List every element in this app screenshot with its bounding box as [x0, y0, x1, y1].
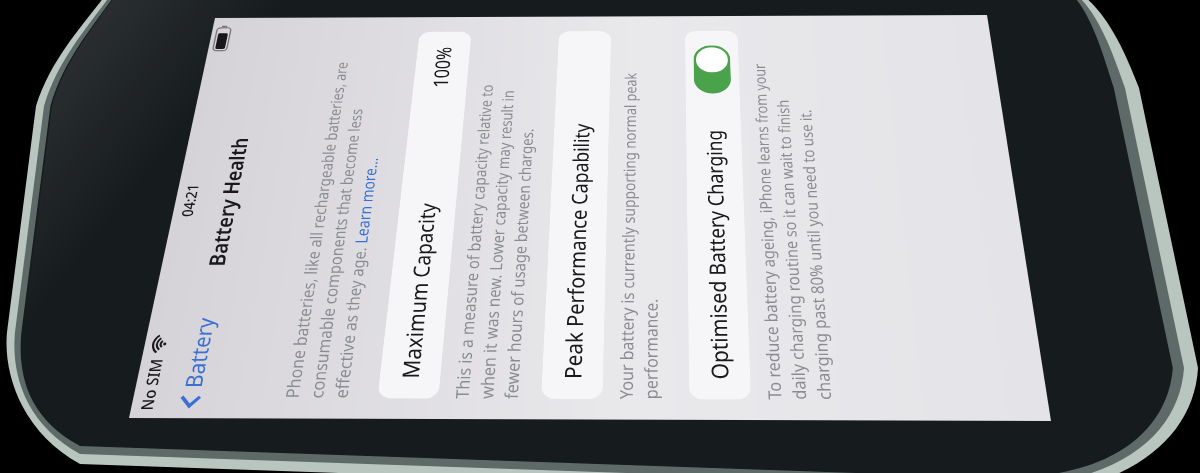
button[interactable]: Battery [0, 20, 88, 64]
staticText: Optimised Battery Charging [32, 419, 256, 442]
button[interactable]: Maximum Capacity [16, 180, 359, 225]
staticText: To reduce battery ageing, iPhone learns … [16, 461, 323, 473]
button[interactable]: Optimised Battery Charging [16, 408, 359, 453]
staticText: consumable components that become less [16, 126, 278, 144]
staticText: Battery [24, 31, 83, 54]
staticText: Phone batteries, like all rechargeable b… [16, 108, 327, 126]
staticText: when it was new. Lower capacity may resu… [16, 251, 297, 269]
staticText: effective as they age. Learn more… [16, 144, 229, 162]
staticText: Battery Health [127, 31, 249, 54]
staticText: 04:21 [0, 3, 375, 19]
staticText: This is a measure of battery capacity re… [16, 233, 302, 251]
staticText: Maximum Capacity [32, 191, 185, 214]
staticText: Peak Performance Capability [32, 311, 262, 334]
button[interactable]: Peak Performance Capability [16, 300, 359, 345]
button[interactable]: Optimised Battery Charging [292, 415, 343, 446]
staticText: Your battery is currently supporting nor… [16, 353, 314, 371]
staticText: 100% [299, 191, 343, 214]
staticText: performance. [16, 371, 99, 389]
staticText: fewer hours of usage between charges. [16, 269, 257, 287]
